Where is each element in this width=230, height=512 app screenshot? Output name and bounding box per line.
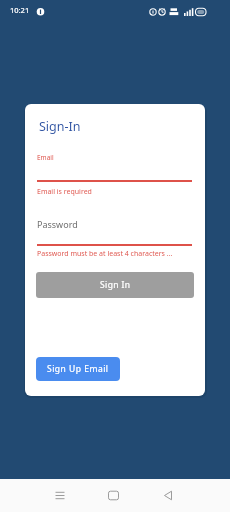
button[interactable]: [153, 479, 230, 512]
staticText: Sign Up Email: [47, 363, 109, 375]
staticText: Sign-In: [39, 118, 81, 135]
staticText: Email is required: [37, 187, 92, 197]
staticText: Email: [37, 153, 54, 162]
button[interactable]: [37, 148, 192, 182]
button[interactable]: Sign In: [36, 272, 194, 298]
button[interactable]: Sign Up Email: [36, 357, 120, 381]
button[interactable]: [0, 479, 76, 512]
staticText: Sign In: [100, 279, 131, 291]
staticText: Password: [37, 218, 78, 230]
staticText: Password must be at least 4 characters .…: [37, 249, 173, 259]
button[interactable]: [37, 212, 192, 246]
button[interactable]: [76, 479, 153, 512]
staticText: 10:21: [10, 5, 30, 15]
